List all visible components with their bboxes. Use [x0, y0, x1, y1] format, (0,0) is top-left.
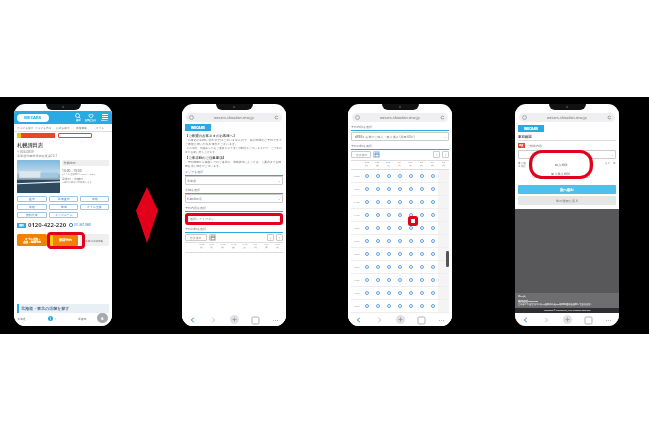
- button[interactable]: [405, 287, 416, 299]
- button[interactable]: [394, 222, 405, 234]
- button[interactable]: [362, 274, 372, 286]
- button[interactable]: 前の画面に戻る: [518, 196, 616, 205]
- button[interactable]: 1: [48, 316, 53, 321]
- button[interactable]: ✓: [532, 152, 590, 160]
- button[interactable]: [372, 209, 383, 221]
- button[interactable]: [427, 170, 438, 182]
- button[interactable]: [362, 300, 372, 312]
- button[interactable]: クルマを売る: [34, 124, 53, 131]
- button[interactable]: [405, 274, 416, 286]
- button[interactable]: [394, 170, 405, 182]
- button[interactable]: [372, 274, 383, 286]
- button[interactable]: [383, 222, 394, 234]
- button[interactable]: [383, 248, 394, 260]
- button[interactable]: [372, 183, 383, 195]
- button[interactable]: More: [270, 315, 280, 325]
- button[interactable]: Back: [521, 315, 531, 325]
- button[interactable]: Previous week: [267, 234, 274, 241]
- button[interactable]: [416, 287, 427, 299]
- button[interactable]: [383, 170, 394, 182]
- button[interactable]: オイル交換: [80, 204, 109, 210]
- button[interactable]: [427, 300, 438, 312]
- button[interactable]: Back: [188, 315, 198, 325]
- button[interactable]: [383, 209, 394, 221]
- button[interactable]: [416, 248, 427, 260]
- button[interactable]: Search: [75, 113, 81, 122]
- button[interactable]: Back: [354, 315, 364, 325]
- button[interactable]: 店舗の詳細情報: [80, 234, 109, 246]
- button[interactable]: [362, 170, 372, 182]
- button[interactable]: 北海道: [185, 176, 283, 185]
- button[interactable]: オイル交換・: [17, 234, 47, 246]
- button[interactable]: [427, 235, 438, 247]
- button[interactable]: [416, 235, 427, 247]
- button[interactable]: 空き状況: [185, 234, 207, 241]
- button[interactable]: [427, 222, 438, 234]
- button[interactable]: [427, 183, 438, 195]
- button[interactable]: Forward: [208, 315, 218, 325]
- button[interactable]: [383, 235, 394, 247]
- button[interactable]: [427, 248, 438, 260]
- button[interactable]: [372, 300, 383, 312]
- button[interactable]: Calendar: [209, 234, 216, 241]
- button[interactable]: [362, 235, 372, 247]
- button[interactable]: Forward: [541, 315, 551, 325]
- button[interactable]: [416, 261, 427, 273]
- button[interactable]: [362, 183, 372, 195]
- button[interactable]: [383, 183, 394, 195]
- button[interactable]: 次へ進む: [518, 185, 616, 194]
- button[interactable]: Previous week: [433, 151, 440, 158]
- button[interactable]: 整備: [49, 204, 78, 210]
- button[interactable]: [372, 261, 383, 273]
- button[interactable]: 車検整備: [72, 124, 91, 131]
- button[interactable]: WECARS: [185, 124, 211, 131]
- button[interactable]: More: [436, 315, 446, 325]
- button[interactable]: [427, 261, 438, 273]
- button[interactable]: [362, 261, 372, 273]
- button[interactable]: [383, 261, 394, 273]
- button[interactable]: [405, 209, 416, 221]
- button[interactable]: [416, 196, 427, 208]
- button[interactable]: [416, 183, 427, 195]
- button[interactable]: [405, 222, 416, 234]
- button[interactable]: [372, 235, 383, 247]
- button[interactable]: Scroll to top: [97, 313, 108, 323]
- button[interactable]: [362, 222, 372, 234]
- button[interactable]: Next week: [442, 151, 449, 158]
- button[interactable]: [394, 287, 405, 299]
- button[interactable]: [394, 183, 405, 195]
- button[interactable]: Share: [229, 314, 240, 325]
- button[interactable]: 車検: [80, 196, 109, 202]
- button[interactable]: [416, 222, 427, 234]
- button[interactable]: Favorites: [85, 113, 97, 122]
- button[interactable]: [372, 170, 383, 182]
- button[interactable]: Tabs: [416, 315, 426, 325]
- button[interactable]: Forward: [374, 315, 384, 325]
- button[interactable]: More: [603, 315, 613, 325]
- button[interactable]: [394, 235, 405, 247]
- button[interactable]: [372, 287, 383, 299]
- button[interactable]: [438, 248, 449, 260]
- button[interactable]: Tabs: [250, 315, 260, 325]
- button[interactable]: ご選択してください: [185, 214, 283, 223]
- button[interactable]: Address bar: [186, 113, 282, 122]
- button[interactable]: [394, 196, 405, 208]
- button[interactable]: [405, 170, 416, 182]
- button[interactable]: お店を探す: [53, 124, 72, 131]
- button[interactable]: 来店予約: [49, 234, 78, 246]
- button[interactable]: オイル: [91, 124, 110, 131]
- button[interactable]: [427, 287, 438, 299]
- button[interactable]: [427, 196, 438, 208]
- button[interactable]: 車検: [17, 204, 47, 210]
- button[interactable]: [362, 209, 372, 221]
- button[interactable]: Tabs: [583, 315, 593, 325]
- button[interactable]: 無料代車: [17, 212, 47, 218]
